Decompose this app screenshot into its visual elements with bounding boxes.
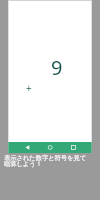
staticText: 暗算しよう！ <box>4 160 42 168</box>
staticText: 9 <box>51 54 63 81</box>
button[interactable]: Recents <box>69 142 78 153</box>
button[interactable]: Back <box>23 142 32 153</box>
button[interactable]: Home <box>45 142 54 153</box>
staticText: + <box>26 81 32 95</box>
staticText: 表示された数字と符号を見て <box>4 154 87 162</box>
